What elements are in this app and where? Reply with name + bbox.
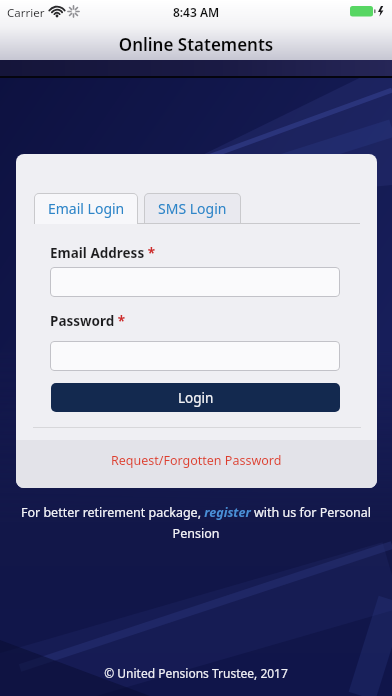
button[interactable] (50, 267, 340, 297)
staticText: Email Login (48, 199, 125, 218)
button[interactable]: Request/Forgotten Password (16, 440, 377, 488)
button[interactable]: SMS Login (144, 193, 241, 224)
button[interactable] (50, 341, 340, 371)
staticText: Password * (50, 312, 126, 330)
staticText: Request/Forgotten Password (111, 452, 282, 469)
staticText: © United Pensions Trustee, 2017 (0, 665, 392, 681)
staticText: Online Statements (0, 33, 392, 56)
staticText: Carrier (7, 5, 45, 21)
staticText: Login (178, 389, 214, 407)
staticText: SMS Login (158, 199, 227, 218)
button[interactable]: Login (51, 383, 340, 412)
staticText: For better retirement package, register … (12, 504, 380, 541)
button[interactable]: Email Login (34, 193, 138, 224)
staticText: Email Address * (50, 244, 155, 262)
staticText: 8:43 AM (0, 4, 392, 20)
